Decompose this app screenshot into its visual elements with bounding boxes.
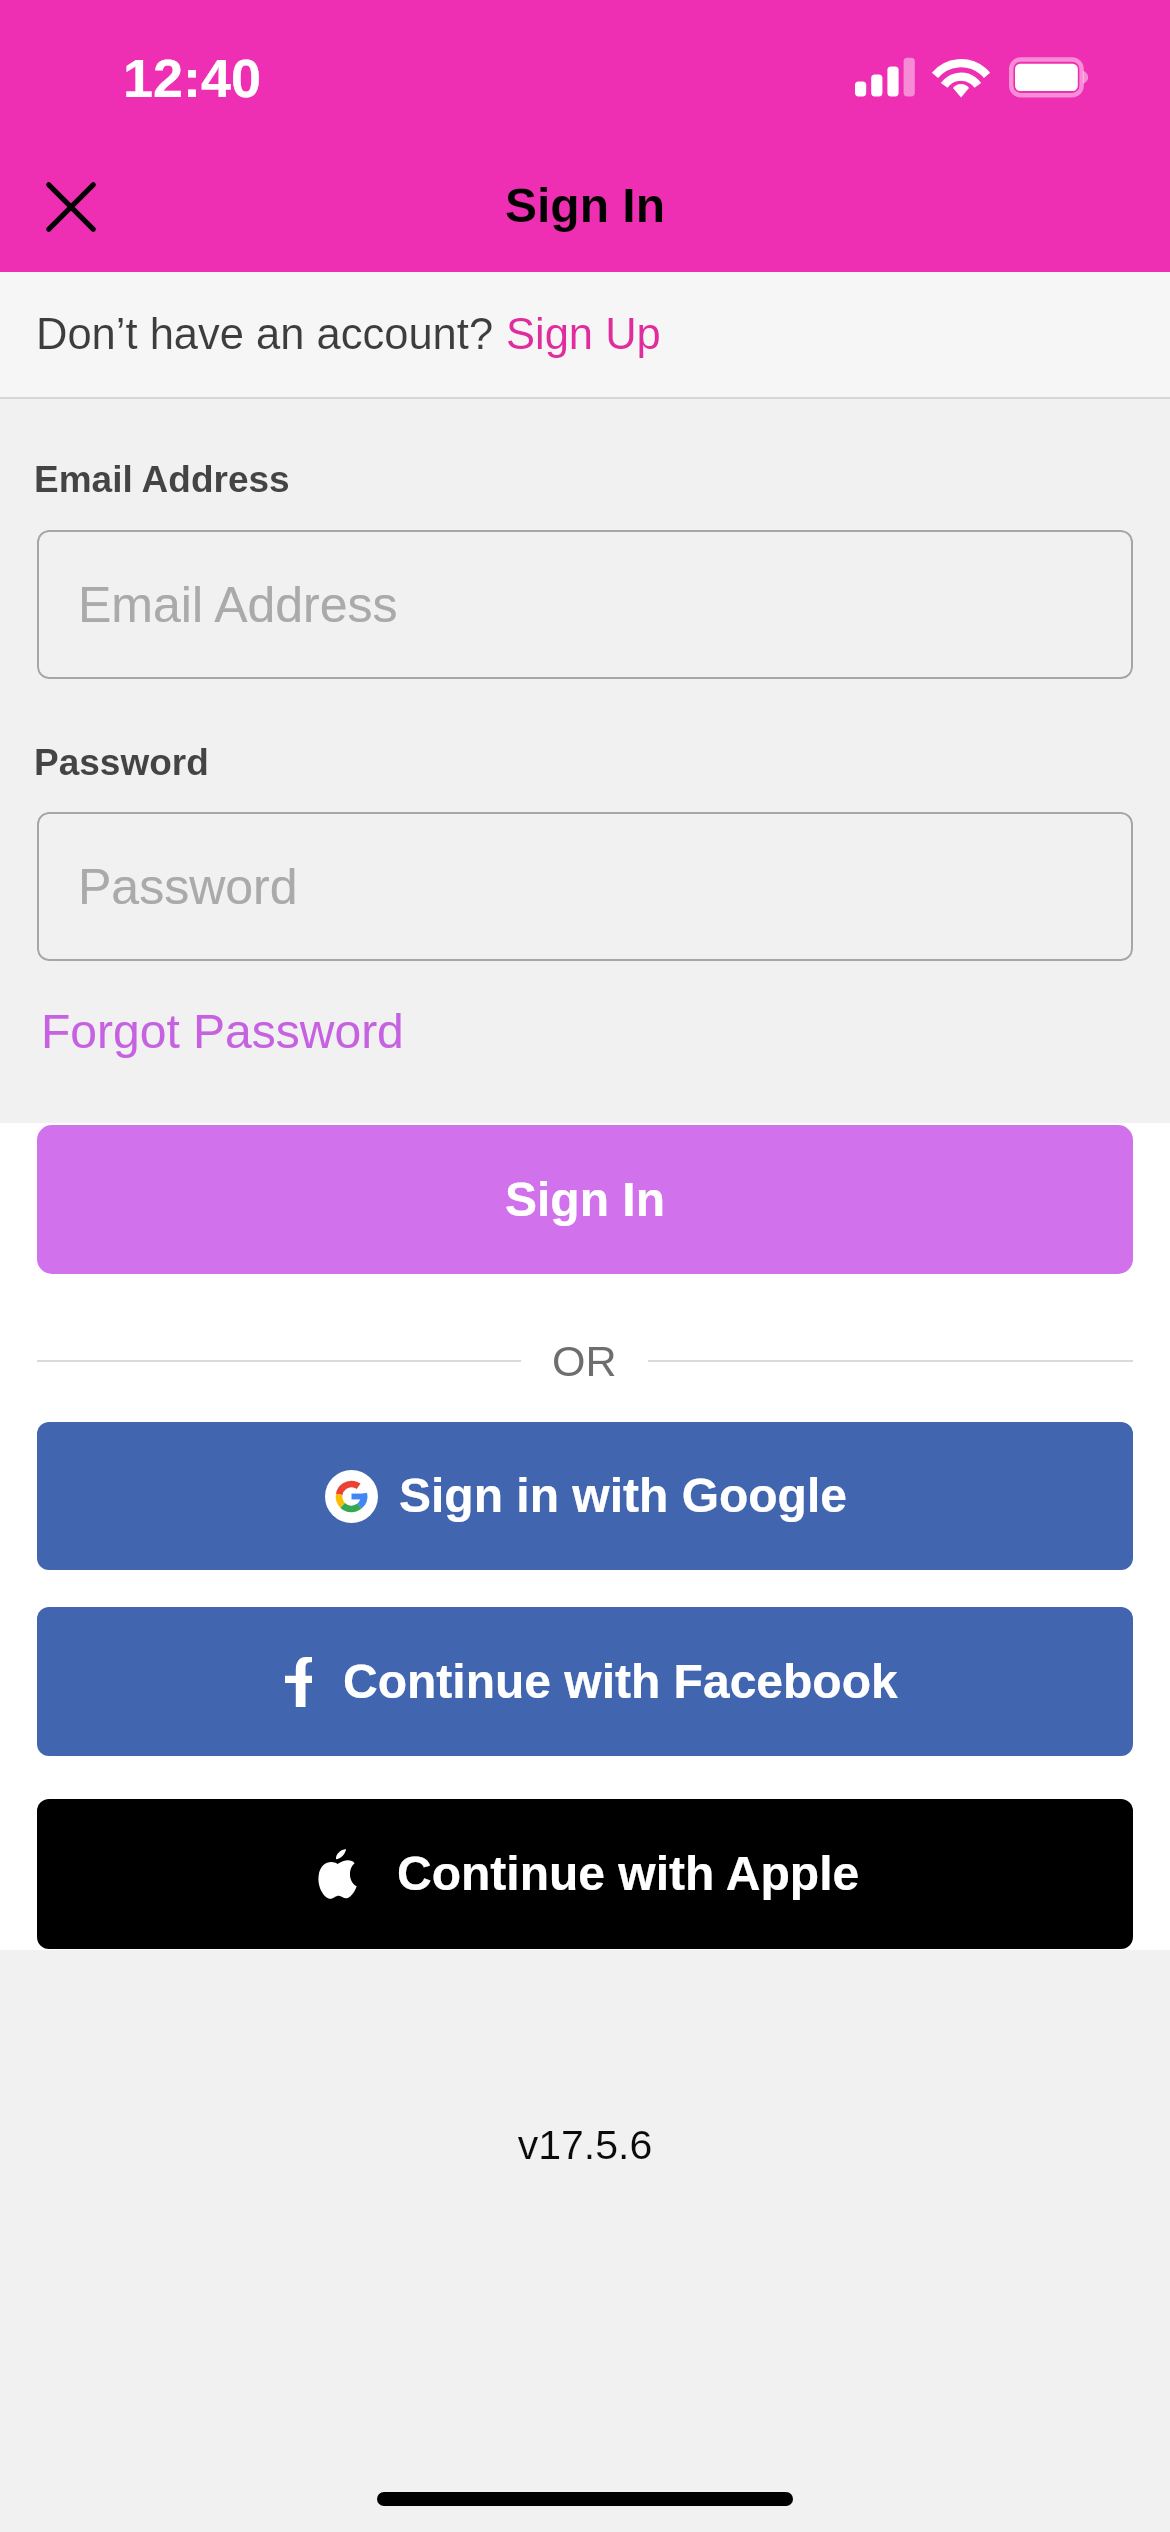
staticText: Sign Up	[506, 310, 661, 359]
staticText: v17.5.6	[0, 2122, 1170, 2168]
staticText: 12:40	[123, 48, 262, 108]
staticText: Don’t have an account?	[36, 310, 506, 359]
button[interactable]: Password	[37, 812, 1133, 961]
staticText: Sign in with Google	[399, 1469, 847, 1523]
button[interactable]: Email Address	[37, 530, 1133, 679]
button[interactable]: Sign in with Google	[37, 1422, 1133, 1570]
staticText: Email Address	[78, 577, 398, 633]
staticText: OR	[552, 1337, 617, 1385]
staticText: Sign In	[505, 1173, 665, 1227]
staticText: Sign In	[0, 179, 1170, 233]
button[interactable]: Continue with Apple	[37, 1799, 1133, 1949]
staticText: Email Address	[34, 459, 290, 500]
button[interactable]: Continue with Facebook	[37, 1607, 1133, 1756]
staticText: Continue with Apple	[397, 1847, 860, 1901]
staticText: Continue with Facebook	[343, 1655, 898, 1709]
button[interactable]: Sign In	[37, 1125, 1133, 1274]
button[interactable]: Close	[24, 160, 118, 254]
staticText: Forgot Password	[41, 1005, 404, 1059]
staticText: Password	[78, 859, 298, 915]
button[interactable]: Forgot Password	[41, 1005, 404, 1059]
button[interactable]: Don’t have an account?	[0, 272, 1170, 397]
staticText: Password	[34, 742, 209, 783]
